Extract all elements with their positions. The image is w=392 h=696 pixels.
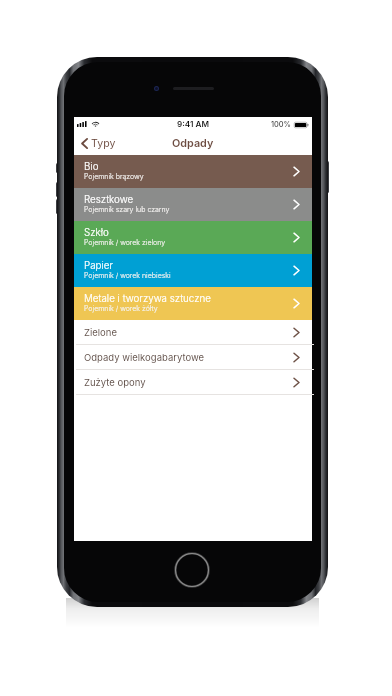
staticText: Pojemnik / worek niebieski [84, 271, 171, 279]
button[interactable]: Metale i tworzywa sztuczne [74, 287, 312, 320]
staticText: Metale i tworzywa sztuczne [84, 293, 211, 305]
staticText: Pojemnik brązowy [84, 172, 144, 180]
button[interactable]: Szkło [74, 221, 312, 254]
staticText: Bio [84, 161, 99, 173]
staticText: Papier [84, 260, 113, 272]
staticText: Szkło [84, 227, 109, 239]
staticText: Zużyte opony [84, 377, 146, 388]
staticText: Odpady wielkogabarytowe [84, 352, 205, 363]
staticText: Resztkowe [84, 194, 134, 206]
staticText: Pojemnik / worek zielony [84, 238, 166, 246]
staticText: Typy [91, 137, 116, 150]
staticText: Pojemnik / worek żółty [84, 304, 158, 312]
button[interactable]: Bio [74, 155, 312, 188]
button[interactable]: Zielone [74, 320, 312, 345]
button[interactable]: Odpady wielkogabarytowe [74, 345, 312, 370]
button[interactable]: Resztkowe [74, 188, 312, 221]
button[interactable]: Typy [74, 134, 124, 153]
staticText: 9:41 AM [177, 119, 210, 129]
staticText: 100% [271, 120, 291, 129]
button[interactable]: Zużyte opony [74, 370, 312, 395]
staticText: Zielone [84, 327, 117, 338]
staticText: Odpady [172, 137, 214, 150]
staticText: Pojemnik szary lub czarny [84, 205, 170, 213]
button[interactable]: Papier [74, 254, 312, 287]
